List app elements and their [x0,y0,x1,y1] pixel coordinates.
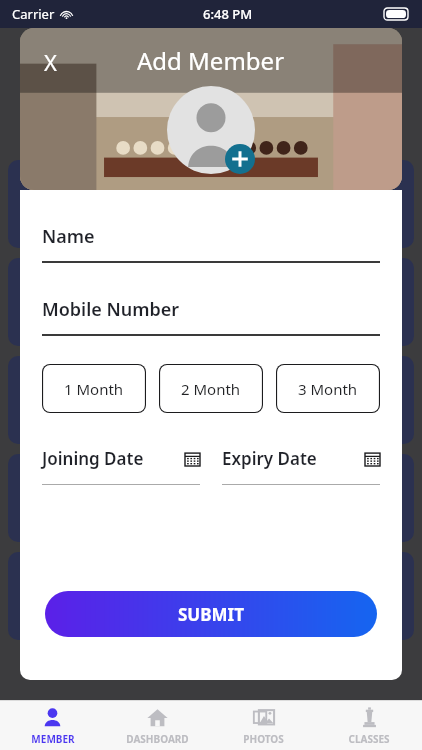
button[interactable]: Add photo [167,86,255,174]
staticText: MEMBER [31,732,75,746]
other: Pick date [185,451,200,466]
button[interactable]: PHOTOS [210,701,316,750]
staticText: PHOTOS [243,732,284,746]
staticText: Name [42,224,95,249]
staticText: 2 Month [181,379,241,399]
button[interactable]: 2 Month [159,364,263,413]
button[interactable]: 3 Month [276,364,380,413]
staticText: CLASSES [348,732,390,746]
staticText: Add Member [137,44,285,77]
button[interactable]: Joining Date [42,447,200,485]
staticText: X [44,47,57,77]
button[interactable]: Close [30,42,70,82]
button[interactable]: DASHBOARD [105,701,210,750]
staticText: Expiry Date [222,447,317,470]
button[interactable]: 1 Month [42,364,146,413]
staticText: SUBMIT [178,603,244,626]
button[interactable]: Name [42,224,380,263]
staticText: Mobile Number [42,297,180,322]
staticText: 3 Month [298,379,358,399]
other: Pick date [365,451,380,466]
button[interactable]: CLASSES [316,701,422,750]
button[interactable]: Mobile Number [42,297,380,336]
button[interactable]: MEMBER [0,701,105,750]
button[interactable]: SUBMIT [45,591,377,637]
staticText: DASHBOARD [126,732,189,746]
staticText: Carrier [12,5,55,23]
staticText: Joining Date [42,447,144,470]
staticText: 6:48 PM [203,5,253,23]
button[interactable]: Expiry Date [222,447,380,485]
staticText: 1 Month [64,379,124,399]
